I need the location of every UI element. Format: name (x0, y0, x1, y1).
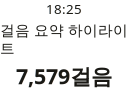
staticText: 걸음 요약 하이라이트 (0, 22, 128, 58)
staticText: 7,579걸음 (16, 62, 112, 90)
staticText: 18:25 (46, 0, 82, 18)
